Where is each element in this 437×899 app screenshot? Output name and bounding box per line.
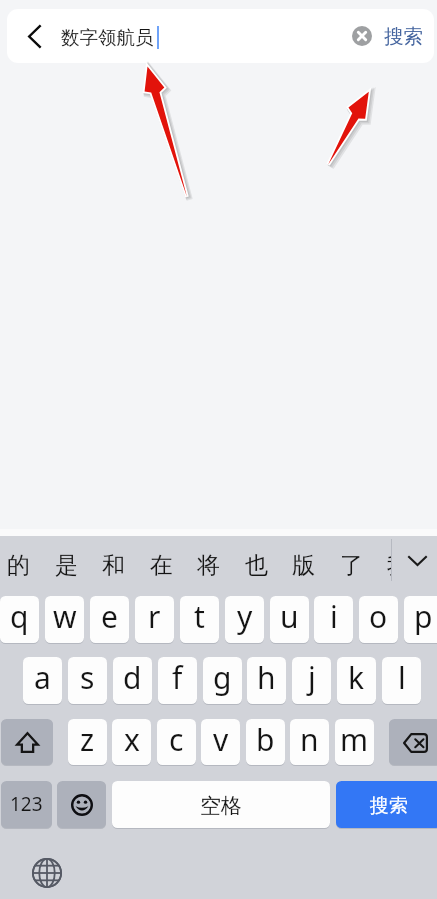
button[interactable]: p [404, 596, 437, 643]
staticText: 版 [292, 551, 315, 580]
button[interactable]: d [113, 657, 152, 704]
staticText: 在 [150, 551, 173, 580]
button[interactable]: g [203, 657, 242, 704]
button[interactable]: Clear text [338, 9, 386, 62]
staticText: 将 [197, 551, 220, 580]
button[interactable]: 在 [141, 536, 181, 588]
staticText: y [237, 596, 253, 637]
button[interactable]: Back [11, 9, 57, 62]
staticText: a [34, 657, 51, 698]
button[interactable]: 空格 [112, 781, 330, 828]
button[interactable]: h [247, 657, 286, 704]
staticText: c [169, 719, 184, 760]
staticText: 我 [387, 551, 391, 580]
staticText: e [101, 596, 118, 637]
staticText: 和 [102, 551, 125, 580]
button[interactable]: o [359, 596, 398, 643]
button[interactable]: m [335, 719, 374, 765]
button[interactable]: c [157, 719, 196, 765]
staticText: 搜索 [384, 24, 423, 49]
staticText: j [308, 657, 316, 698]
button[interactable]: y [225, 596, 264, 643]
button[interactable]: w [45, 596, 84, 643]
staticText: 123 [10, 791, 43, 817]
button[interactable]: v [201, 719, 240, 765]
staticText: q [10, 596, 29, 637]
button[interactable]: 搜索 [376, 10, 431, 63]
button[interactable]: 搜索 [336, 781, 437, 828]
staticText: i [330, 596, 338, 637]
button[interactable]: j [292, 657, 331, 704]
button[interactable]: 也 [236, 536, 276, 588]
staticText: u [280, 596, 299, 637]
staticText: z [80, 719, 95, 760]
button[interactable]: Emoji [57, 781, 106, 828]
button[interactable]: Backspace [389, 719, 437, 765]
button[interactable]: q [0, 596, 39, 643]
staticText: k [348, 657, 365, 698]
staticText: l [398, 657, 406, 698]
button[interactable]: 的 [0, 536, 38, 588]
button[interactable]: a [23, 657, 62, 704]
button[interactable]: Hide candidates [396, 536, 437, 588]
button[interactable]: 我 [378, 536, 391, 588]
staticText: p [414, 596, 433, 637]
staticText: v [213, 719, 229, 760]
button[interactable]: 将 [188, 536, 228, 588]
staticText: t [194, 596, 205, 637]
button[interactable]: t [180, 596, 219, 643]
staticText: d [123, 657, 142, 698]
staticText: f [172, 657, 183, 698]
button[interactable]: r [135, 596, 174, 643]
staticText: h [257, 657, 276, 698]
button[interactable]: Switch keyboard language [26, 852, 68, 894]
staticText: 空格 [200, 793, 242, 819]
staticText: 数字领航员 [61, 26, 154, 49]
staticText: b [256, 719, 275, 760]
button[interactable]: Numbers [1, 781, 52, 828]
staticText: s [80, 657, 95, 698]
button[interactable]: 了 [331, 536, 371, 588]
staticText: g [213, 657, 232, 698]
button[interactable]: u [270, 596, 309, 643]
button[interactable]: Shift [1, 719, 53, 765]
button[interactable]: b [246, 719, 285, 765]
staticText: 搜索 [370, 794, 408, 818]
button[interactable]: x [112, 719, 151, 765]
button[interactable]: n [290, 719, 329, 765]
staticText: r [148, 596, 161, 637]
button[interactable]: 和 [93, 536, 133, 588]
button[interactable]: k [337, 657, 376, 704]
staticText: 的 [7, 551, 30, 580]
button[interactable]: f [158, 657, 197, 704]
button[interactable]: 是 [46, 536, 86, 588]
staticText: x [124, 719, 140, 760]
button[interactable]: z [68, 719, 107, 765]
button[interactable]: i [314, 596, 353, 643]
staticText: o [369, 596, 388, 637]
staticText: n [300, 719, 319, 760]
staticText: m [340, 719, 369, 760]
button[interactable]: e [90, 596, 129, 643]
button[interactable]: s [68, 657, 107, 704]
staticText: 也 [245, 551, 268, 580]
button[interactable]: l [382, 657, 421, 704]
staticText: w [53, 596, 77, 637]
staticText: 了 [340, 551, 363, 580]
button[interactable]: 版 [283, 536, 323, 588]
staticText: 是 [55, 551, 78, 580]
